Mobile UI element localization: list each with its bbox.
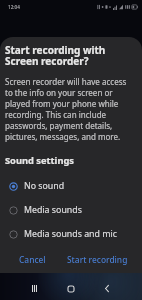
staticText: Cancel (19, 254, 46, 265)
button[interactable]: Media sounds and mic (5, 222, 137, 246)
staticText: Start recording (67, 254, 128, 265)
button[interactable]: Media sounds (5, 198, 137, 222)
staticText: No sound (24, 180, 65, 192)
staticText: Media sounds and mic (24, 228, 117, 240)
staticText: 12:04 (8, 4, 20, 10)
button[interactable]: Recents (22, 277, 46, 300)
button[interactable]: Cancel (12, 251, 53, 268)
staticText: Start recording with Screen recorder? (5, 43, 106, 68)
staticText: Sound settings (5, 154, 74, 167)
button[interactable]: No sound (5, 174, 137, 198)
button[interactable]: Back (95, 277, 119, 300)
staticText: Screen recorder will have access to the … (5, 76, 127, 142)
button[interactable]: Start recording (60, 251, 135, 268)
staticText: Media sounds (24, 204, 82, 216)
button[interactable]: Home (59, 277, 83, 300)
